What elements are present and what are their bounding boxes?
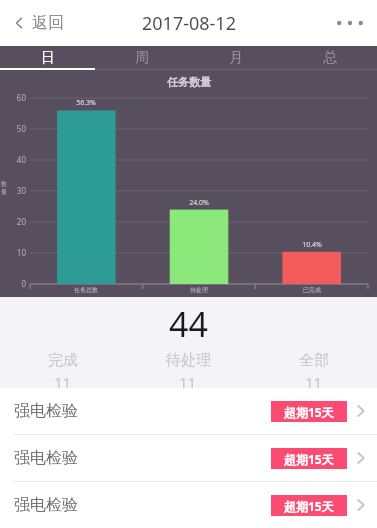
staticText: 待处理 [166, 351, 211, 370]
staticText: 10 [6, 247, 26, 258]
staticText: 50 [6, 123, 26, 134]
staticText: 56.3% [64, 98, 108, 108]
staticText: 10.4% [290, 240, 334, 250]
staticText: 完成 [48, 351, 78, 370]
staticText: 0 [6, 278, 26, 289]
button[interactable]: 强电检验 [0, 388, 377, 434]
staticText: 超期15天 [284, 404, 334, 420]
button[interactable]: 返回 [0, 7, 74, 39]
staticText: 24.0% [177, 198, 221, 208]
staticText: 待处理 [169, 286, 229, 294]
staticText: 20 [6, 216, 26, 227]
button[interactable]: 强电检验 [0, 435, 377, 481]
staticText: 任务总数 [56, 286, 116, 294]
staticText: 数 [1, 180, 7, 188]
staticText: 全部 [299, 351, 329, 370]
staticText: 强电检验 [14, 495, 78, 515]
other: Open detail [355, 449, 367, 467]
button[interactable]: 日 [0, 46, 95, 70]
button[interactable]: 待处理 [125, 351, 251, 388]
staticText: 强电检验 [14, 401, 78, 421]
other: Open detail [355, 402, 367, 420]
staticText: 周 [135, 49, 149, 67]
button[interactable]: 强电检验 [0, 482, 377, 528]
button[interactable]: More options [323, 8, 377, 38]
staticText: 44 [0, 301, 377, 347]
staticText: 2017-08-12 [142, 11, 236, 36]
staticText: 任务数量 [167, 75, 211, 89]
staticText: 强电检验 [14, 448, 78, 468]
other: Open detail [355, 496, 367, 514]
staticText: 返回 [32, 13, 64, 33]
staticText: 量 [1, 188, 7, 196]
staticText: 11 [54, 372, 72, 388]
button[interactable]: 完成 [0, 351, 125, 388]
staticText: 60 [6, 92, 26, 103]
staticText: 已完成 [282, 286, 342, 294]
staticText: 11 [179, 372, 197, 388]
staticText: 日 [41, 49, 55, 67]
staticText: 11 [305, 372, 323, 388]
staticText: 30 [6, 185, 26, 196]
staticText: 超期15天 [284, 451, 334, 467]
staticText: 40 [6, 154, 26, 165]
button[interactable]: 总 [283, 46, 377, 70]
button[interactable]: 月 [189, 46, 283, 70]
staticText: 月 [229, 49, 243, 67]
button[interactable]: 周 [95, 46, 189, 70]
button[interactable]: 全部 [251, 351, 377, 388]
staticText: 超期15天 [284, 498, 334, 514]
staticText: 总 [323, 49, 337, 67]
